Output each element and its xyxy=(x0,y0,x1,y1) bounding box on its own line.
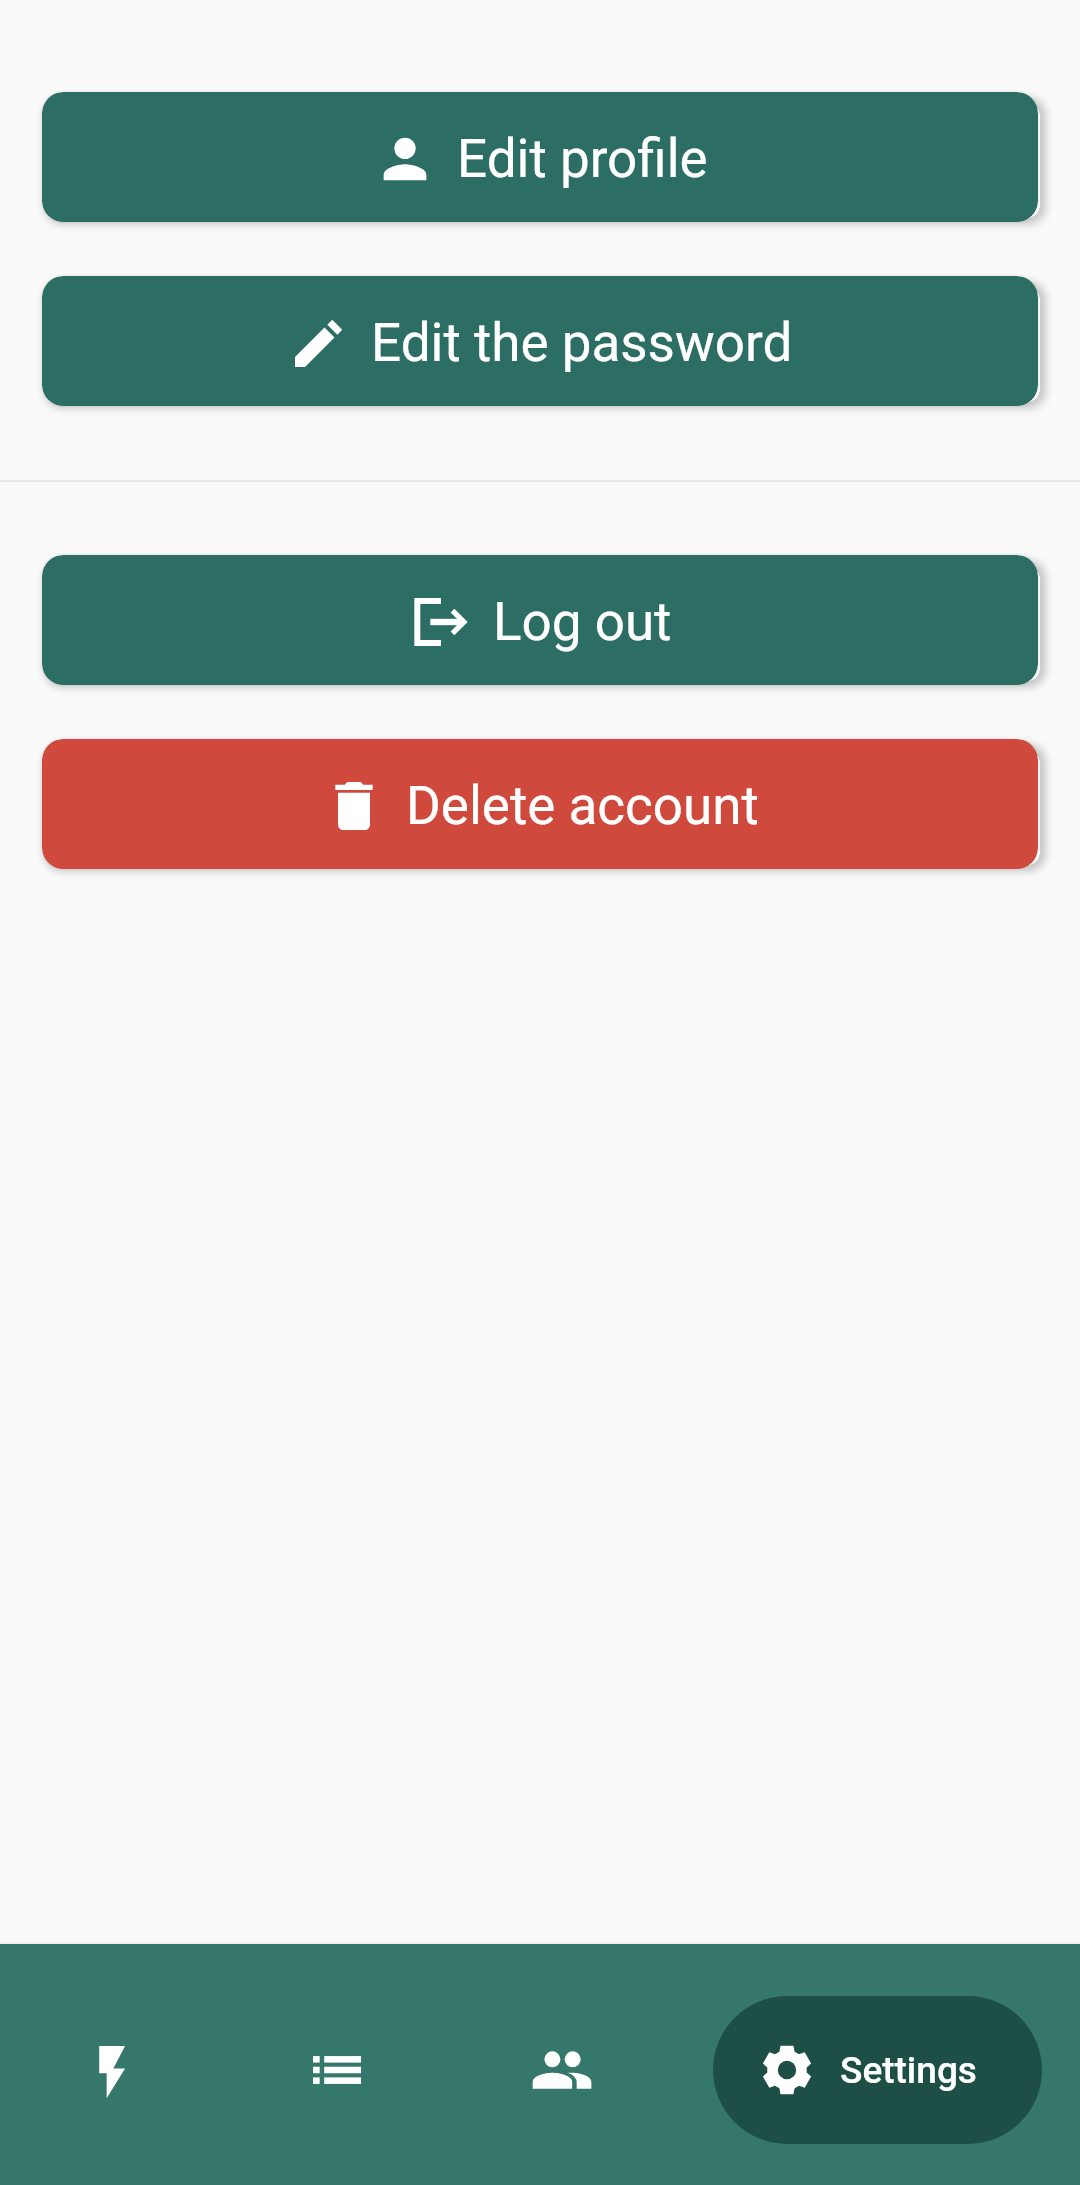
staticText: Edit profile xyxy=(457,128,708,190)
button[interactable]: List xyxy=(224,1944,449,2185)
button[interactable]: Log out xyxy=(42,555,1038,685)
button[interactable]: Delete account xyxy=(42,739,1038,869)
button[interactable]: Settings xyxy=(713,1996,1042,2144)
button[interactable]: Edit the password xyxy=(42,276,1038,406)
button[interactable]: Flash xyxy=(0,1944,224,2185)
staticText: Settings xyxy=(840,2049,977,2092)
button[interactable]: Edit profile xyxy=(42,92,1038,222)
staticText: Delete account xyxy=(406,775,759,837)
button[interactable]: People xyxy=(449,1944,674,2185)
staticText: Edit the password xyxy=(371,312,793,374)
staticText: Log out xyxy=(493,591,672,653)
